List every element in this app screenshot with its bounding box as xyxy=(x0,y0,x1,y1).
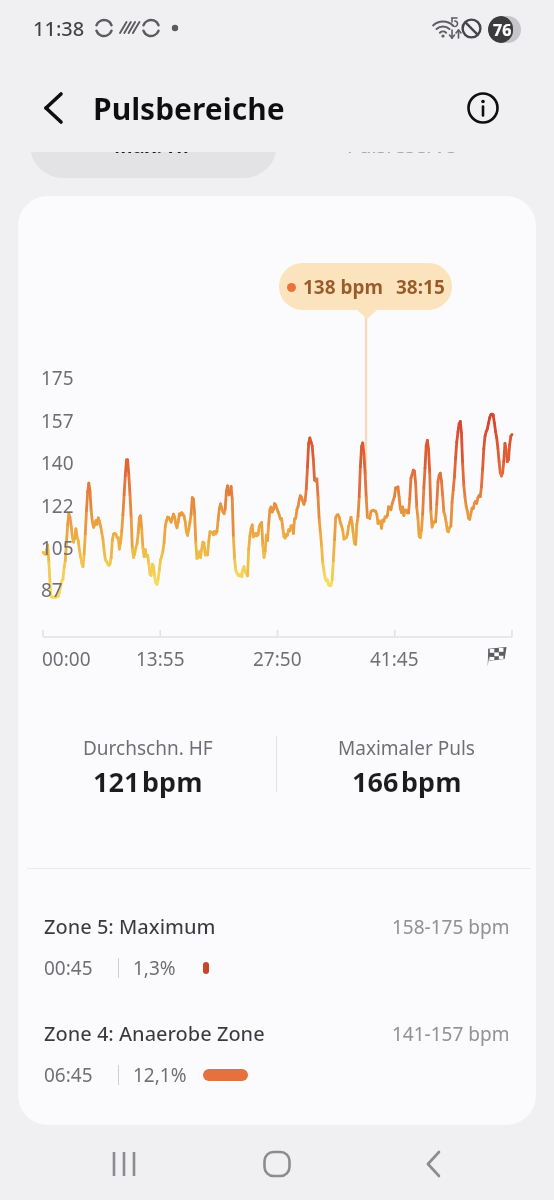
button[interactable]: Recent apps xyxy=(92,1132,156,1196)
staticText: 13:55 xyxy=(136,646,185,672)
staticText: 11:38 xyxy=(33,15,85,42)
staticText: Durchschn. HF xyxy=(83,735,213,761)
staticText: 140 xyxy=(41,450,74,476)
staticText: Zone 5: Maximum xyxy=(44,913,216,940)
button[interactable]: Home xyxy=(245,1132,309,1196)
staticText: Zone 4: Anaerobe Zone xyxy=(44,1020,265,1047)
staticText: 121 xyxy=(93,763,140,800)
staticText: 06:45 xyxy=(44,1062,93,1088)
staticText: Max. HF xyxy=(114,132,194,159)
staticText: 12,1% xyxy=(133,1062,187,1088)
button[interactable]: Back xyxy=(402,1132,466,1196)
staticText: 141-157 bpm xyxy=(392,1021,510,1047)
staticText: 158-175 bpm xyxy=(392,914,510,940)
button[interactable]: Zone 4: Anaerobe Zone xyxy=(44,1020,510,1088)
staticText: 87 xyxy=(41,577,63,603)
staticText: 175 xyxy=(41,365,74,391)
staticText: 76 xyxy=(493,19,512,41)
staticText: 41:45 xyxy=(370,646,419,672)
staticText: 166 xyxy=(352,763,399,800)
staticText: 157 xyxy=(41,408,74,434)
staticText: 38:15 xyxy=(396,274,445,300)
button[interactable]: Back xyxy=(30,84,78,132)
staticText: 105 xyxy=(41,535,74,561)
staticText: bpm xyxy=(142,763,203,800)
button[interactable]: Information xyxy=(461,86,505,130)
staticText: 138 bpm xyxy=(303,274,384,300)
staticText: 27:50 xyxy=(253,646,302,672)
staticText: 1,3% xyxy=(133,955,176,981)
staticText: Maximaler Puls xyxy=(338,735,475,761)
button[interactable]: Pulsreserve xyxy=(279,112,524,178)
staticText: 00:00 xyxy=(42,646,91,672)
staticText: 122 xyxy=(41,493,74,519)
staticText: Pulsreserve xyxy=(347,132,456,159)
staticText: bpm xyxy=(401,763,462,800)
button[interactable]: Max. HF xyxy=(30,112,277,178)
button[interactable]: Zone 5: Maximum xyxy=(44,913,510,981)
staticText: Pulsbereiche xyxy=(93,88,285,129)
staticText: 00:45 xyxy=(44,955,93,981)
